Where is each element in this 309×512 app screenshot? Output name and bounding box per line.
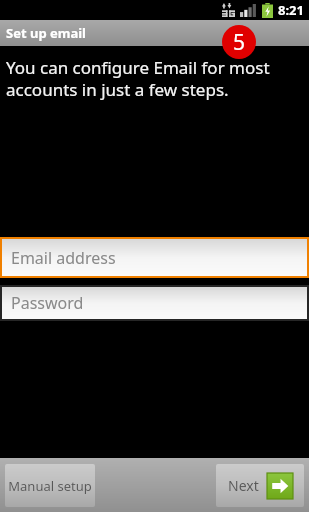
staticText: Set up email bbox=[6, 24, 86, 42]
staticText: Manual setup bbox=[8, 477, 92, 495]
staticText: 8:21 bbox=[278, 1, 304, 19]
staticText: Password bbox=[11, 292, 84, 314]
staticText: Email address bbox=[11, 247, 116, 269]
staticText: 5 bbox=[233, 28, 246, 57]
button[interactable]: Next bbox=[216, 464, 304, 507]
button[interactable]: Password bbox=[2, 287, 307, 319]
button[interactable]: Manual setup bbox=[5, 464, 95, 507]
button[interactable]: Email address bbox=[2, 239, 307, 276]
other: Next bbox=[267, 473, 293, 499]
staticText: Next bbox=[228, 476, 259, 495]
staticText: You can configure Email for most account… bbox=[6, 56, 299, 101]
